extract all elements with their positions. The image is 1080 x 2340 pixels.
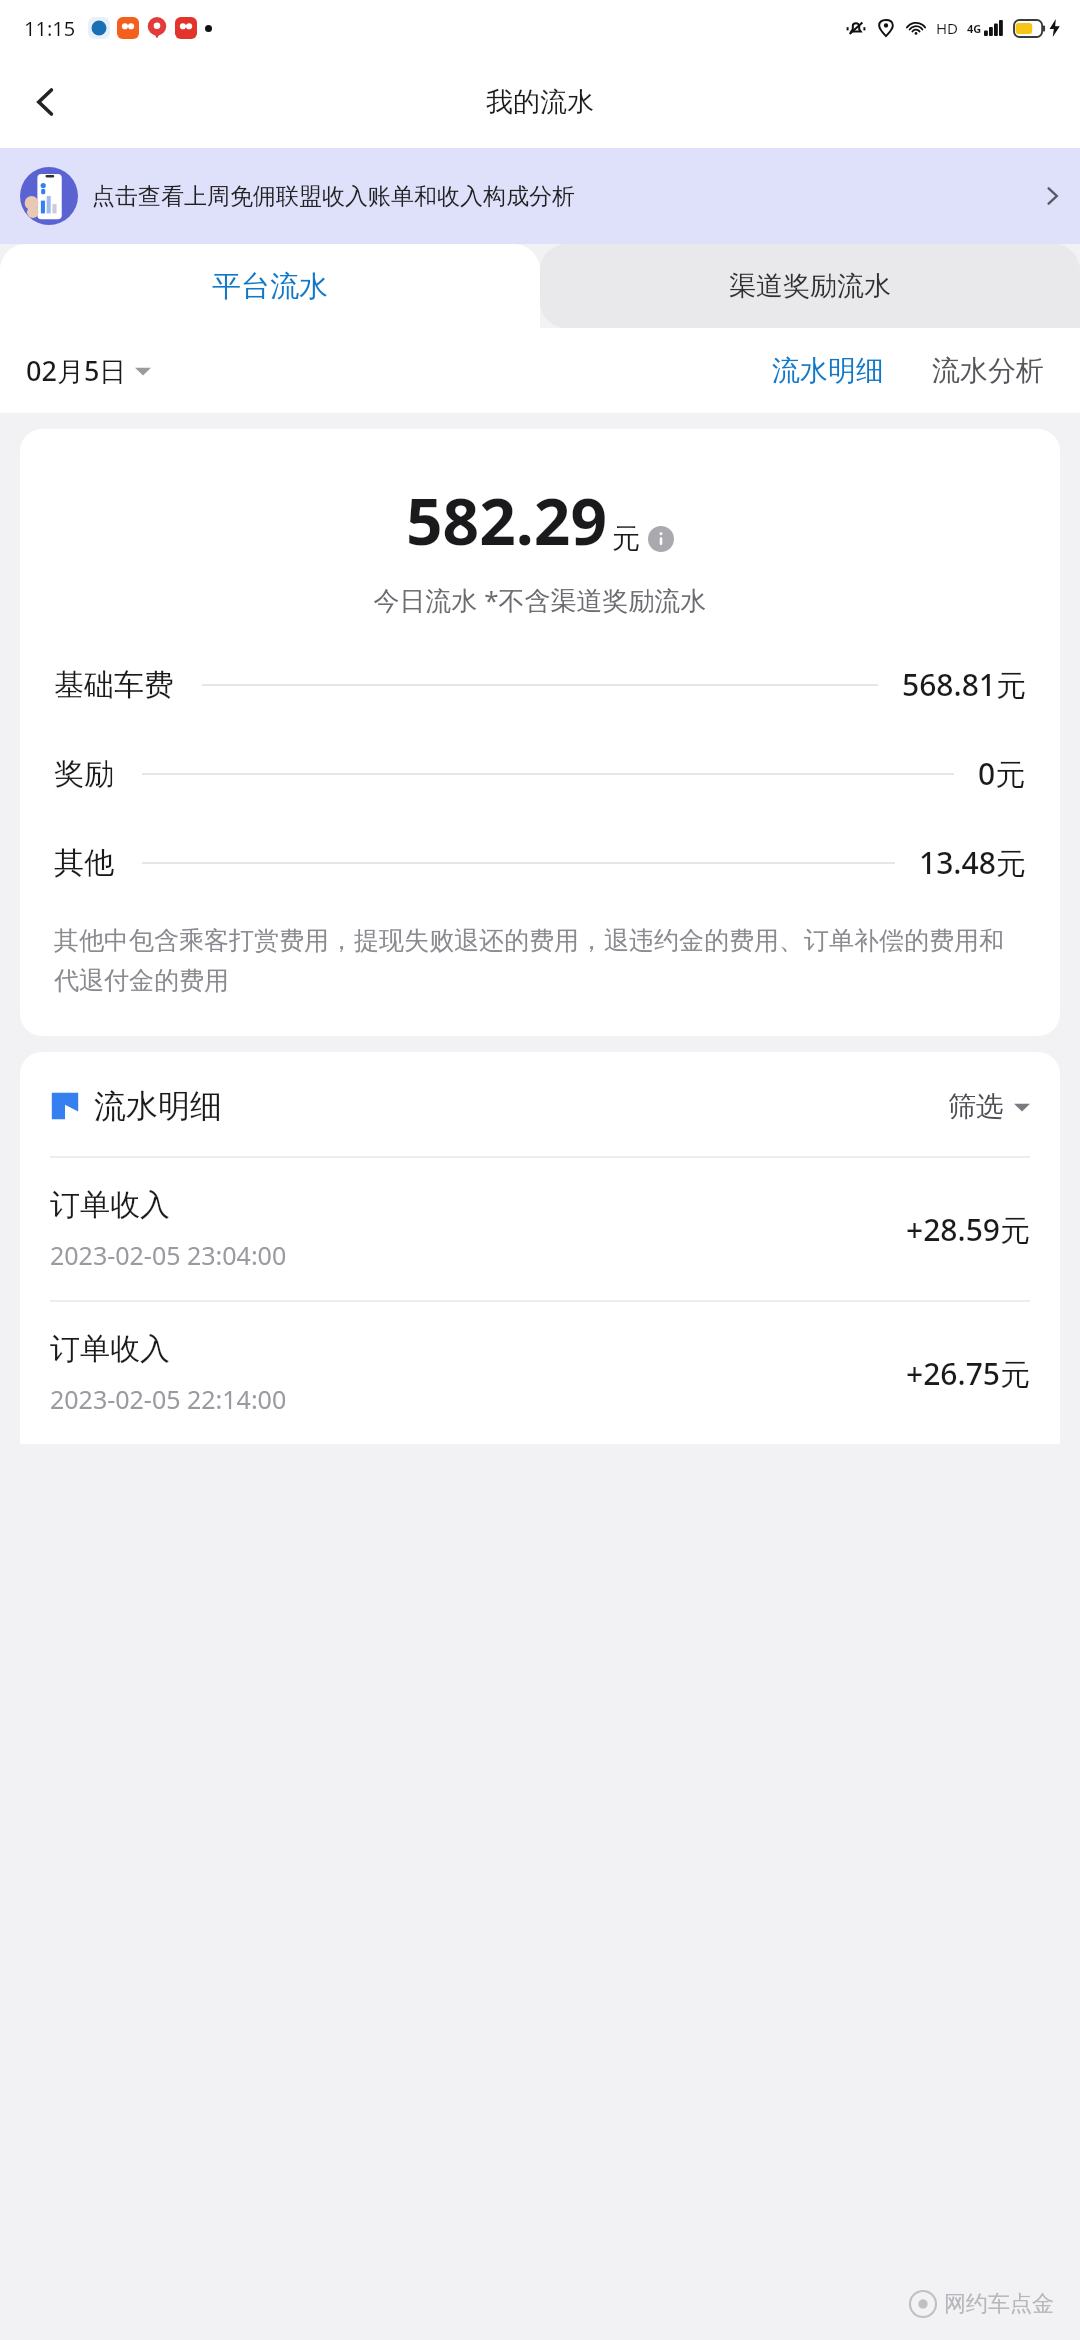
staticText: 元 (612, 521, 640, 556)
button[interactable]: 平台流水 (0, 244, 540, 328)
staticText: 流水分析 (932, 353, 1044, 388)
button[interactable]: 渠道奖励流水 (540, 244, 1080, 328)
staticText: 582.29 (406, 477, 608, 564)
staticText: 0元 (978, 753, 1026, 794)
staticText: 奖励 (54, 755, 114, 793)
button[interactable]: 02月5日 (26, 352, 151, 389)
staticText: 订单收入 (50, 1186, 170, 1224)
button[interactable]: 订单收入 (50, 1302, 1030, 1444)
button[interactable]: 流水分析 (932, 353, 1044, 388)
staticText: +28.59元 (906, 1209, 1030, 1250)
staticText: 点击查看上周免佣联盟收入账单和收入构成分析 (92, 182, 1032, 211)
staticText: 流水明细 (772, 353, 884, 388)
button[interactable]: Back (10, 66, 82, 138)
button[interactable]: Info (648, 526, 674, 552)
staticText: 568.81元 (902, 664, 1026, 705)
staticText: 筛选 (948, 1089, 1004, 1124)
staticText: 其他中包含乘客打赏费用，提现失败退还的费用，退违约金的费用、订单补偿的费用和代退… (54, 925, 1026, 996)
staticText: +26.75元 (906, 1353, 1030, 1394)
staticText: 流水明细 (94, 1086, 222, 1126)
button[interactable]: 订单收入 (50, 1158, 1030, 1300)
button[interactable]: 流水明细 (772, 353, 884, 388)
staticText: 13.48元 (919, 842, 1026, 883)
staticText: 平台流水 (212, 268, 328, 305)
staticText: 4G (967, 21, 982, 36)
staticText: HD (936, 18, 959, 38)
staticText: 今日流水 *不含渠道奖励流水 (54, 582, 1026, 618)
staticText: 渠道奖励流水 (729, 269, 891, 303)
staticText: 我的流水 (486, 85, 594, 119)
staticText: 2023-02-05 23:04:00 (50, 1238, 287, 1272)
staticText: 02月5日 (26, 352, 127, 389)
staticText: 网约车点金 (944, 2290, 1054, 2318)
button[interactable]: 点击查看上周免佣联盟收入账单和收入构成分析 (0, 148, 1080, 244)
staticText: 11:15 (24, 15, 76, 42)
staticText: 其他 (54, 844, 114, 882)
button[interactable]: 筛选 (948, 1089, 1030, 1124)
staticText: 基础车费 (54, 666, 174, 704)
staticText: 订单收入 (50, 1330, 170, 1368)
staticText: 2023-02-05 22:14:00 (50, 1382, 287, 1416)
